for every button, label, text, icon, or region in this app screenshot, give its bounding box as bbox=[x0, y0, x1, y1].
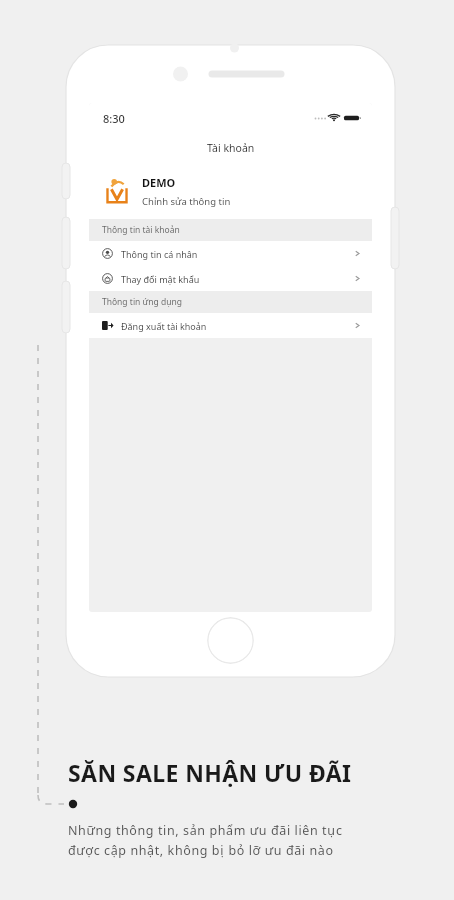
staticText: Những thông tin, sản phẩm ưu đãi liên tụ… bbox=[68, 822, 343, 839]
button[interactable]: Profile avatar bbox=[89, 163, 372, 219]
button[interactable]: Thông tin cá nhân bbox=[89, 241, 372, 266]
other: Home bbox=[207, 617, 254, 664]
button[interactable]: Thay đổi mật khẩu bbox=[89, 266, 372, 291]
staticText: Đăng xuất tài khoản bbox=[121, 320, 207, 332]
staticText: SĂN SALE NHẬN ƯU ĐÃI bbox=[68, 757, 352, 788]
staticText: Tài khoản bbox=[207, 141, 255, 155]
staticText: Thông tin tài khoản bbox=[102, 224, 180, 236]
staticText: Thay đổi mật khẩu bbox=[121, 273, 200, 285]
staticText: DEMO bbox=[142, 175, 176, 190]
staticText: Thông tin ứng dụng bbox=[102, 296, 182, 308]
staticText: được cập nhật, không bị bỏ lỡ ưu đãi nào bbox=[68, 842, 334, 859]
other: Profile avatar bbox=[103, 177, 131, 205]
button[interactable]: Đăng xuất tài khoản bbox=[89, 313, 372, 338]
staticText: Chỉnh sửa thông tin bbox=[142, 195, 231, 208]
staticText: 8:30 bbox=[103, 111, 125, 126]
staticText: Thông tin cá nhân bbox=[121, 248, 198, 260]
